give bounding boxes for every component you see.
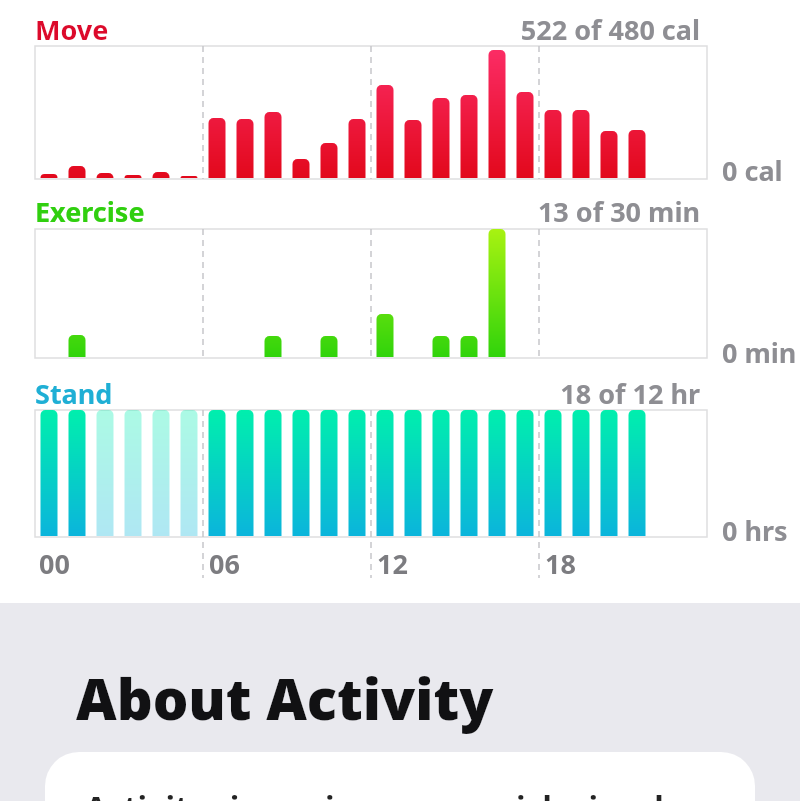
staticText: 522 of 480 cal	[300, 11, 700, 48]
button[interactable]: Activity rings give you a quick visual	[45, 752, 755, 801]
staticText: 00	[39, 545, 70, 582]
staticText: Move	[35, 11, 109, 48]
staticText: 0 hrs	[722, 512, 788, 549]
staticText: 12	[377, 545, 408, 582]
staticText: 13 of 30 min	[300, 193, 700, 230]
staticText: 06	[209, 545, 240, 582]
staticText: Exercise	[35, 193, 145, 230]
staticText: 18	[545, 545, 576, 582]
staticText: 0 cal	[722, 152, 783, 189]
staticText: 0 min	[722, 334, 797, 371]
staticText: About Activity	[76, 660, 494, 736]
staticText: 18 of 12 hr	[300, 375, 700, 412]
staticText: Stand	[35, 375, 113, 412]
staticText: Activity rings give you a quick visual	[85, 786, 664, 801]
